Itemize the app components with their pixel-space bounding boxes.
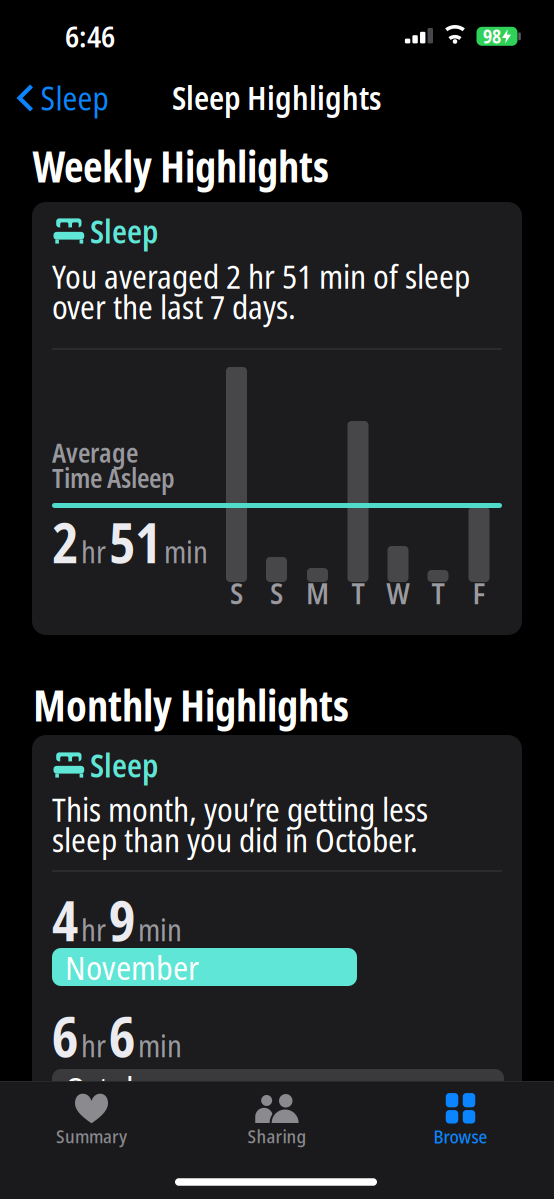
- staticText: W: [386, 574, 409, 612]
- staticText: hr: [81, 530, 106, 572]
- staticText: min: [164, 530, 208, 572]
- button[interactable]: Back: [19, 76, 108, 120]
- staticText: This month, you’re getting less sleep th…: [52, 786, 428, 862]
- staticText: T: [431, 574, 444, 612]
- button[interactable]: Browse: [433, 1093, 487, 1149]
- staticText: hr: [81, 908, 106, 950]
- staticText: Sleep Highlights: [172, 76, 382, 119]
- button[interactable]: Sleep: [32, 735, 522, 1199]
- staticText: 51: [109, 505, 161, 579]
- staticText: F: [472, 574, 485, 612]
- button[interactable]: Sleep: [32, 202, 522, 635]
- staticText: 4: [52, 883, 78, 957]
- staticText: min: [138, 908, 182, 950]
- staticText: Average Time Asleep: [52, 434, 175, 496]
- staticText: M: [306, 574, 329, 612]
- staticText: Sleep: [40, 76, 108, 120]
- staticText: Summary: [56, 1123, 127, 1149]
- staticText: 9: [109, 883, 135, 957]
- staticText: 2: [52, 505, 78, 579]
- staticText: S: [230, 574, 243, 612]
- staticText: min: [138, 1024, 182, 1066]
- button[interactable]: Sharing: [247, 1093, 306, 1149]
- staticText: T: [351, 574, 364, 612]
- staticText: 6:46: [65, 16, 115, 56]
- staticText: Sleep: [90, 743, 158, 787]
- staticText: 6: [52, 999, 78, 1073]
- staticText: October: [65, 1065, 170, 1111]
- button[interactable]: Summary: [56, 1093, 127, 1149]
- staticText: hr: [81, 1024, 106, 1066]
- staticText: Sleep: [90, 209, 158, 253]
- staticText: Weekly Highlights: [33, 137, 329, 195]
- staticText: 6: [109, 999, 135, 1073]
- staticText: Sharing: [247, 1123, 306, 1149]
- staticText: Monthly Highlights: [33, 676, 349, 734]
- staticText: S: [270, 574, 283, 612]
- staticText: Browse: [433, 1123, 487, 1149]
- staticText: You averaged 2 hr 51 min of sleep over t…: [52, 253, 470, 329]
- staticText: 98: [483, 24, 501, 49]
- staticText: November: [65, 944, 199, 990]
